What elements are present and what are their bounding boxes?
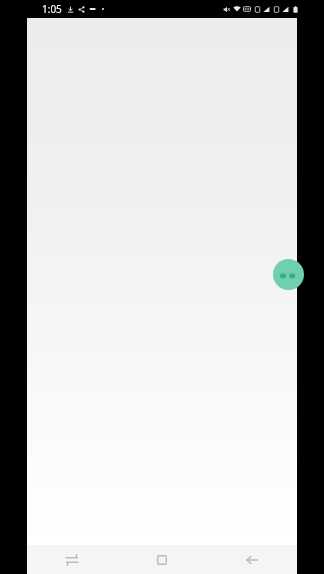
button[interactable]: Chat bubble: [273, 259, 304, 290]
button[interactable]: Back: [207, 545, 297, 574]
button[interactable]: Recent apps: [27, 545, 117, 574]
staticText: 1:05: [42, 2, 62, 16]
button[interactable]: Home: [117, 545, 207, 574]
